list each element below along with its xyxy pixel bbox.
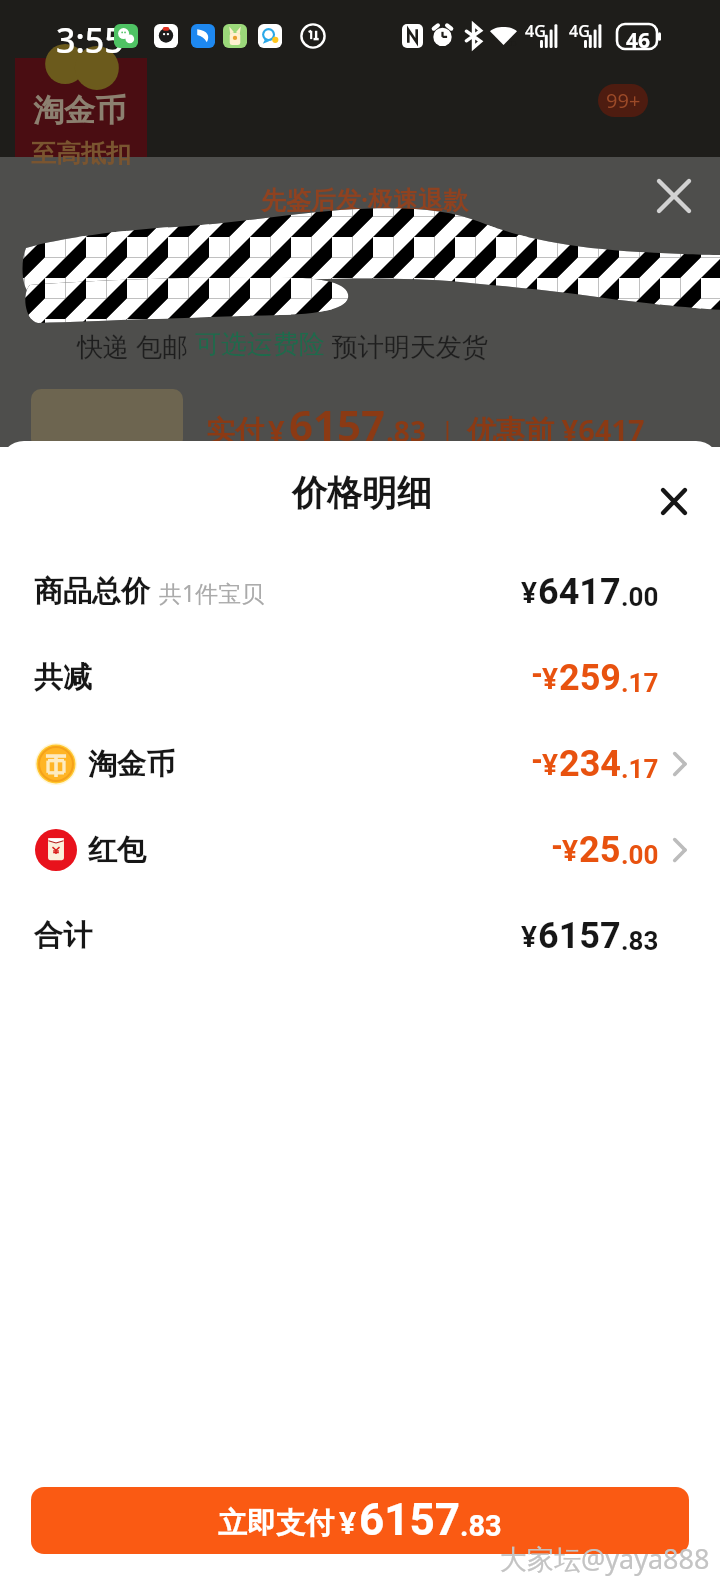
button[interactable]: 共减 — [0, 635, 720, 720]
button[interactable]: Close — [641, 469, 705, 533]
staticText: | — [440, 413, 455, 450]
staticText: .17 — [621, 668, 659, 698]
staticText: 99+ — [606, 87, 641, 114]
staticText: 6157 — [538, 915, 621, 957]
staticText: 234 — [559, 743, 621, 785]
staticText: .83 — [460, 1509, 502, 1543]
staticText: 25 — [579, 829, 621, 871]
staticText: - — [552, 822, 562, 864]
staticText: - — [532, 736, 542, 778]
staticText: 实付 — [206, 413, 264, 450]
staticText: ¥ — [562, 831, 579, 869]
button[interactable]: 合计 — [0, 893, 720, 978]
staticText: ¥ — [542, 745, 559, 783]
staticText: ¥ — [521, 917, 538, 955]
staticText: 大家坛@yaya888 — [500, 1540, 710, 1577]
button[interactable]: 红包 — [0, 807, 720, 892]
staticText: 立即支付 — [218, 1505, 334, 1542]
staticText: 4G — [525, 20, 546, 42]
staticText: 259 — [559, 657, 621, 699]
staticText: 优惠前 ¥6417 — [467, 410, 645, 450]
staticText: 价格明细 — [292, 471, 432, 515]
staticText: 4G — [569, 20, 590, 42]
staticText: 6417 — [538, 571, 621, 613]
staticText: 快递 包邮 — [77, 328, 195, 364]
staticText: 先鉴后发·极速退款 — [261, 182, 469, 216]
staticText: 红包 — [88, 832, 146, 869]
staticText: .00 — [621, 840, 659, 870]
staticText: ¥ — [521, 573, 538, 611]
staticText: 淘金币 — [33, 91, 126, 130]
button[interactable]: 立即支付 — [31, 1487, 689, 1554]
staticText: 可选运费险 — [195, 328, 325, 361]
staticText: .00 — [621, 582, 659, 612]
staticText: ¥ — [339, 1502, 357, 1543]
staticText: ¥ — [268, 411, 285, 450]
staticText: 6157 — [289, 396, 386, 453]
staticText: 共1件宝贝 — [159, 577, 265, 608]
staticText: 46 — [626, 26, 651, 55]
button[interactable]: 商品总价 — [0, 549, 720, 634]
staticText: 预计明天发货 — [325, 328, 488, 364]
staticText: 6157 — [359, 1494, 460, 1546]
staticText: 合计 — [34, 917, 92, 954]
staticText: .83 — [621, 926, 659, 956]
staticText: .17 — [621, 754, 659, 784]
staticText: 共减 — [34, 659, 92, 696]
staticText: ¥ — [542, 659, 559, 697]
staticText: 至高抵扣 — [31, 138, 131, 169]
staticText: 3:55 — [56, 17, 124, 63]
staticText: 淘金币 — [88, 746, 175, 783]
staticText: .83 — [386, 412, 426, 450]
staticText: 商品总价 — [34, 573, 150, 610]
button[interactable]: Close page — [657, 179, 691, 213]
button[interactable]: 淘金币 — [0, 721, 720, 806]
staticText: - — [532, 650, 542, 692]
